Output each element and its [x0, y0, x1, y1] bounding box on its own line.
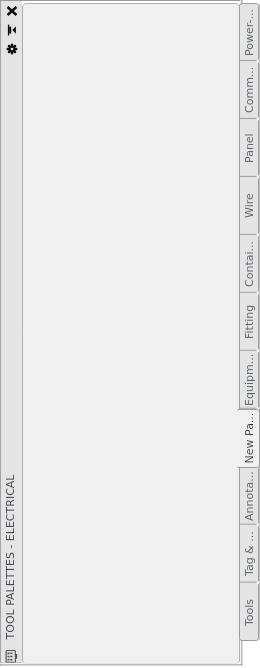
staticText: Contai...	[243, 241, 256, 287]
button[interactable]: Tag & ...	[239, 525, 259, 583]
button[interactable]: Properties	[4, 41, 20, 57]
staticText: TOOL PALETTES - ELECTRICAL	[3, 474, 16, 639]
button[interactable]: New Pa...	[238, 409, 259, 467]
staticText: New Pa...	[242, 412, 255, 463]
staticText: Equipm...	[243, 353, 256, 406]
button[interactable]: Panel	[239, 119, 259, 177]
staticText: Comm...	[243, 66, 256, 113]
staticText: Fitting	[243, 304, 256, 339]
button[interactable]: Close	[4, 3, 20, 19]
button[interactable]: Power-...	[239, 3, 259, 61]
button[interactable]: Comm...	[239, 61, 259, 119]
staticText: Power-...	[243, 8, 256, 56]
button[interactable]: Equipm...	[239, 351, 259, 409]
button[interactable]: Auto-hide	[4, 22, 20, 38]
button[interactable]: Fitting	[239, 293, 259, 351]
button[interactable]: Tool palettes	[4, 649, 20, 665]
button[interactable]: Annota...	[239, 467, 259, 525]
staticText: Panel	[243, 133, 256, 163]
button[interactable]: Contai...	[239, 235, 259, 293]
staticText: Wire	[243, 193, 256, 218]
staticText: Tag & ...	[243, 531, 256, 576]
staticText: Annota...	[243, 471, 256, 521]
staticText: Tools	[243, 598, 256, 626]
button[interactable]: Tools	[239, 583, 259, 641]
button[interactable]: Wire	[239, 177, 259, 235]
